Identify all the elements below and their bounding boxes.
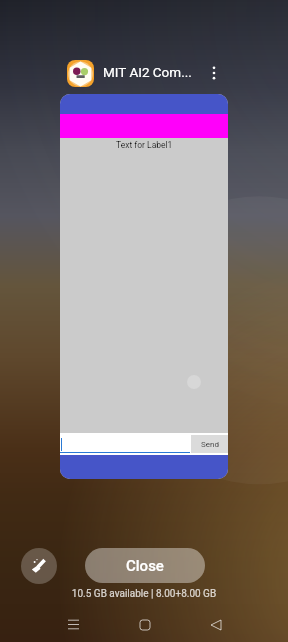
staticText: Text for Label1 <box>116 140 173 150</box>
staticText: MIT AI2 Com... <box>103 64 192 80</box>
button[interactable]: Close <box>85 548 205 583</box>
button[interactable]: Text for Label1 <box>60 94 228 479</box>
staticText: Close <box>126 557 164 575</box>
staticText: Send <box>201 440 219 449</box>
button[interactable]: Clear all <box>21 548 57 584</box>
button[interactable]: Back <box>197 606 234 642</box>
button[interactable]: Home <box>126 606 163 642</box>
staticText: 10.5 GB available | 8.00+8.00 GB <box>0 588 288 600</box>
button[interactable]: Send <box>191 435 228 453</box>
button[interactable]: More options <box>202 61 226 85</box>
button[interactable]: Recents <box>55 606 92 642</box>
